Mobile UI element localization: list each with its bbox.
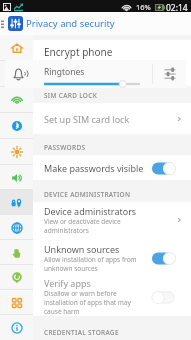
- button[interactable]: Unknown sources: [33, 238, 191, 277]
- staticText: Set up SIM card lock: [44, 113, 175, 125]
- button[interactable]: Quick toggle: [0, 113, 33, 139]
- staticText: 02:14: [166, 2, 188, 14]
- button[interactable]: Toggle: [151, 159, 177, 177]
- button[interactable]: Quick toggle: [0, 165, 33, 190]
- button[interactable]: Quick toggle: [0, 265, 33, 290]
- staticText: Make passwords visible: [44, 162, 144, 174]
- staticText: DEVICE ADMINISTRATION: [44, 190, 131, 199]
- button[interactable]: Encrypt phone: [33, 40, 191, 63]
- staticText: Encrypt phone: [44, 45, 113, 59]
- button[interactable]: Device administrators: [33, 202, 191, 238]
- button[interactable]: Quick toggle: [0, 215, 33, 240]
- staticText: 16%: [136, 2, 151, 12]
- staticText: SIM CARD LOCK: [44, 91, 98, 100]
- button[interactable]: Quick toggle: [0, 61, 33, 87]
- button[interactable]: Quick toggle: [0, 290, 33, 315]
- staticText: Ringtones: [44, 66, 85, 78]
- staticText: CREDENTIAL STORAGE: [44, 328, 119, 337]
- staticText: Verify apps: [44, 277, 91, 289]
- button[interactable]: Set up SIM card lock: [33, 103, 191, 134]
- button[interactable]: Sound settings: [153, 60, 186, 88]
- button[interactable]: Quick toggle: [0, 87, 33, 113]
- staticText: View or deactivate device administrators: [44, 217, 121, 235]
- button[interactable]: Toggle: [151, 288, 177, 306]
- button[interactable]: More options: [0, 12, 6, 35]
- staticText: PASSWORDS: [44, 143, 86, 152]
- button[interactable]: Quick toggle: [0, 315, 33, 340]
- button[interactable]: Quick toggle: [0, 190, 33, 215]
- button[interactable]: Quick toggle: [0, 139, 33, 165]
- staticText: Allow installation of apps from unknown …: [44, 255, 137, 273]
- button[interactable]: Verify apps: [33, 277, 191, 316]
- staticText: Privacy and security: [26, 17, 115, 30]
- button[interactable]: Quick toggle: [0, 240, 33, 265]
- button[interactable]: [33, 63, 191, 86]
- button[interactable]: Make passwords visible: [33, 155, 191, 180]
- staticText: Device administrators: [44, 205, 137, 217]
- staticText: Unknown sources: [44, 243, 120, 255]
- button[interactable]: Quick toggle: [0, 35, 33, 61]
- staticText: Disallow or warn before installation of …: [44, 289, 131, 316]
- button[interactable]: Toggle: [151, 249, 177, 267]
